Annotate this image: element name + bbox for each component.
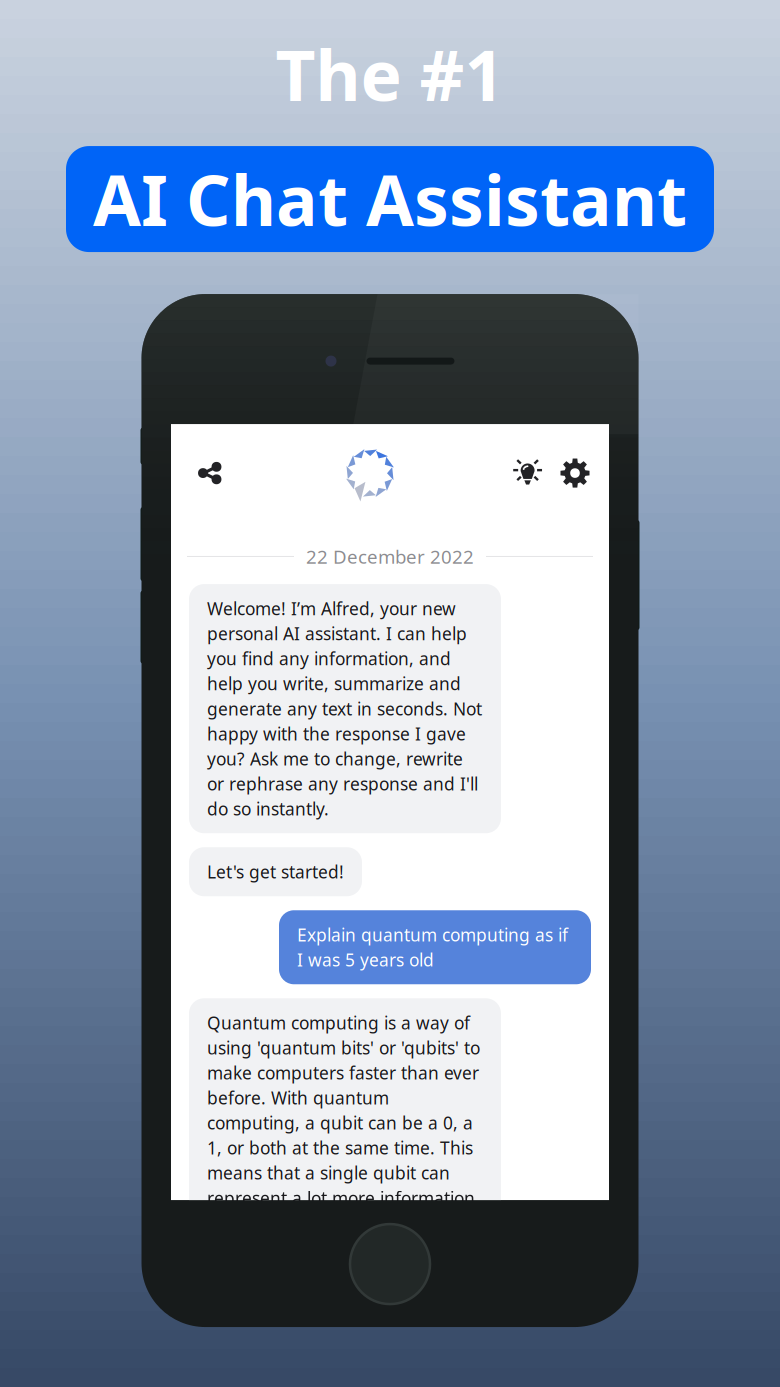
staticText: Let's get started! (207, 860, 344, 883)
button[interactable]: Share (183, 446, 237, 500)
staticText: AI Chat Assistant (93, 153, 687, 245)
staticText: Explain quantum computing as if I was 5 … (297, 923, 568, 971)
button[interactable]: Settings (551, 446, 599, 500)
staticText: Welcome! I’m Alfred, your new personal A… (207, 597, 482, 820)
staticText: Quantum computing is a way of using 'qua… (207, 1011, 480, 1259)
staticText: 22 December 2022 (306, 544, 474, 569)
button[interactable]: Tips (503, 446, 551, 500)
staticText: The #1 (275, 28, 504, 120)
